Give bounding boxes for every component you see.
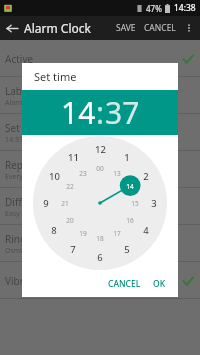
staticText: 8: [51, 224, 57, 237]
button[interactable]: Back: [0, 16, 24, 40]
staticText: Difficulty: [5, 195, 47, 209]
button[interactable]: Label: [0, 77, 200, 114]
staticText: 7: [70, 243, 76, 256]
staticText: 16: [126, 216, 134, 225]
staticText: 17: [113, 229, 121, 238]
staticText: 14:37: [5, 135, 23, 145]
staticText: 00: [96, 164, 104, 173]
staticText: Alarm: [5, 98, 25, 108]
staticText: CANCEL: [144, 22, 176, 34]
button[interactable]: Vibrate: [0, 262, 200, 299]
staticText: 20: [66, 216, 74, 225]
button[interactable]: Difficulty: [0, 188, 200, 225]
staticText: Set time: [34, 69, 77, 84]
button[interactable]: 37: [105, 92, 140, 133]
staticText: 11: [68, 151, 79, 164]
staticText: 14:38: [174, 2, 196, 14]
staticText: 9: [43, 197, 49, 210]
staticText: 14: [61, 92, 96, 133]
button[interactable]: Set time: [0, 114, 200, 151]
staticText: Active: [5, 52, 34, 66]
staticText: 13: [113, 169, 121, 178]
staticText: 23: [79, 169, 87, 178]
staticText: 6: [97, 251, 103, 264]
staticText: Repeat: [5, 158, 38, 172]
staticText: 4: [143, 224, 149, 237]
button[interactable]: Ringtone: [0, 225, 200, 262]
staticText: 12: [95, 143, 106, 156]
staticText: 37: [105, 92, 140, 133]
button[interactable]: OK: [147, 274, 172, 294]
staticText: 15: [131, 199, 139, 208]
button[interactable]: More options: [180, 19, 198, 37]
staticText: SAVE: [116, 22, 136, 34]
staticText: Easy: [5, 209, 20, 219]
button[interactable]: Clock face, select hour: [33, 136, 167, 270]
staticText: :: [96, 92, 105, 133]
staticText: 10: [49, 170, 60, 183]
staticText: 22: [66, 182, 74, 191]
button[interactable]: Repeat: [0, 151, 200, 188]
staticText: 3: [151, 197, 157, 210]
button[interactable]: SAVE: [112, 22, 140, 34]
staticText: 19: [79, 229, 87, 238]
staticText: Ringtone: [5, 232, 48, 246]
staticText: Set time: [5, 121, 44, 135]
staticText: Every day: [5, 172, 37, 182]
staticText: 14: [126, 182, 134, 191]
staticText: OK: [153, 278, 166, 290]
staticText: 47%: [146, 3, 162, 14]
staticText: Label: [5, 84, 31, 98]
staticText: 5: [124, 243, 130, 256]
button[interactable]: Active: [0, 40, 200, 77]
staticText: 2: [143, 170, 149, 183]
staticText: Alarm Clock: [24, 20, 91, 36]
staticText: CANCEL: [108, 278, 141, 290]
button[interactable]: CANCEL: [140, 22, 180, 34]
button[interactable]: CANCEL: [102, 274, 147, 294]
button[interactable]: 14: [61, 92, 96, 133]
staticText: 21: [61, 199, 69, 208]
staticText: Vibrate: [5, 274, 39, 288]
staticText: 1: [124, 151, 130, 164]
staticText: 18: [96, 234, 104, 243]
staticText: Osmium: [5, 246, 34, 256]
